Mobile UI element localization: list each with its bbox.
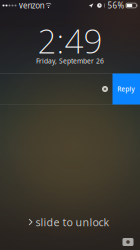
staticText: Friday, September 26 [36, 57, 104, 65]
button[interactable]: Clear notification [97, 73, 112, 105]
staticText: 56% [107, 0, 124, 11]
staticText: 2:49 [37, 18, 102, 63]
staticText: Verizon [18, 0, 45, 11]
staticText: slide to unlock [35, 215, 109, 229]
button[interactable]: Camera [119, 234, 136, 249]
button[interactable]: Reply [112, 73, 140, 104]
staticText: Reply [117, 85, 135, 93]
